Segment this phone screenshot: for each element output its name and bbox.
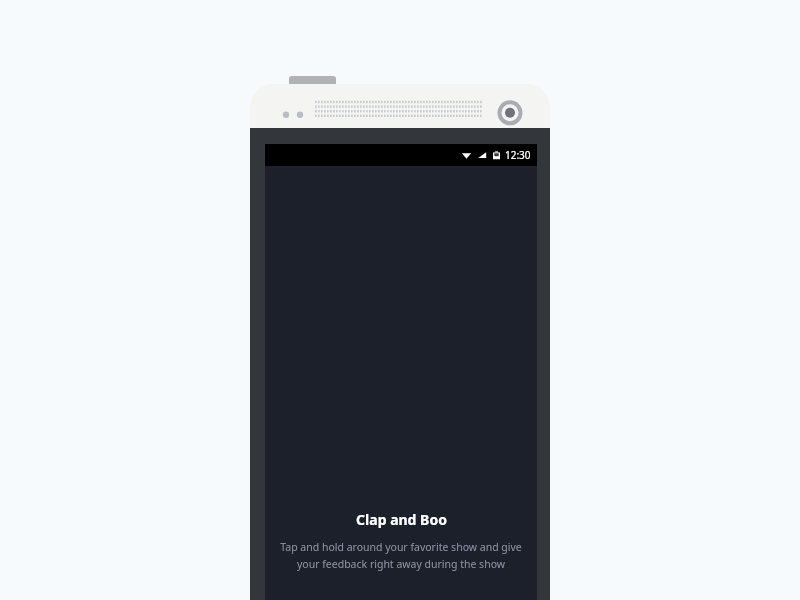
staticText: 12:30 [505, 148, 531, 162]
staticText: Tap and hold around your favorite show a… [275, 540, 527, 571]
staticText: Clap and Boo [356, 510, 447, 529]
